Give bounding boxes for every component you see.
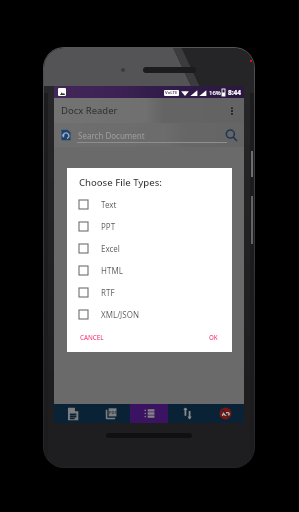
button[interactable]: More options — [223, 102, 241, 120]
staticText: OK — [209, 333, 218, 341]
staticText: Text — [101, 199, 117, 210]
button[interactable]: Remove ads — [206, 404, 244, 423]
button[interactable]: Search — [223, 127, 239, 143]
button[interactable]: Documents — [54, 404, 92, 423]
button[interactable]: Docx Reader — [54, 98, 244, 123]
staticText: AD — [222, 410, 230, 417]
button[interactable]: OK — [208, 331, 219, 343]
staticText: 16% — [209, 89, 221, 97]
staticText: RTF — [101, 287, 115, 298]
button[interactable]: Excel — [79, 237, 219, 259]
button[interactable]: HTML — [79, 259, 219, 281]
staticText: Excel — [101, 243, 120, 254]
staticText: PPT — [101, 221, 116, 232]
staticText: Choose File Types: — [79, 176, 162, 189]
button[interactable]: PDF files — [92, 404, 130, 423]
staticText: HTML — [101, 265, 123, 276]
staticText: Search Document — [78, 130, 145, 141]
staticText: CANCEL — [80, 333, 104, 341]
button[interactable]: XML/JSON — [79, 303, 219, 325]
staticText: PDF — [109, 410, 117, 415]
staticText: 8:44 — [228, 88, 241, 97]
button[interactable]: Sort — [168, 404, 206, 423]
button[interactable]: RTF — [79, 281, 219, 303]
button[interactable]: CANCEL — [79, 331, 105, 343]
button[interactable]: PPT — [79, 215, 219, 237]
staticText: XML/JSON — [101, 309, 140, 320]
button[interactable]: Text — [79, 193, 219, 215]
button[interactable]: Recent documents — [59, 128, 73, 142]
button[interactable]: All files list — [130, 404, 168, 423]
staticText: VoLTE — [165, 90, 178, 96]
staticText: Docx Reader — [61, 104, 118, 117]
